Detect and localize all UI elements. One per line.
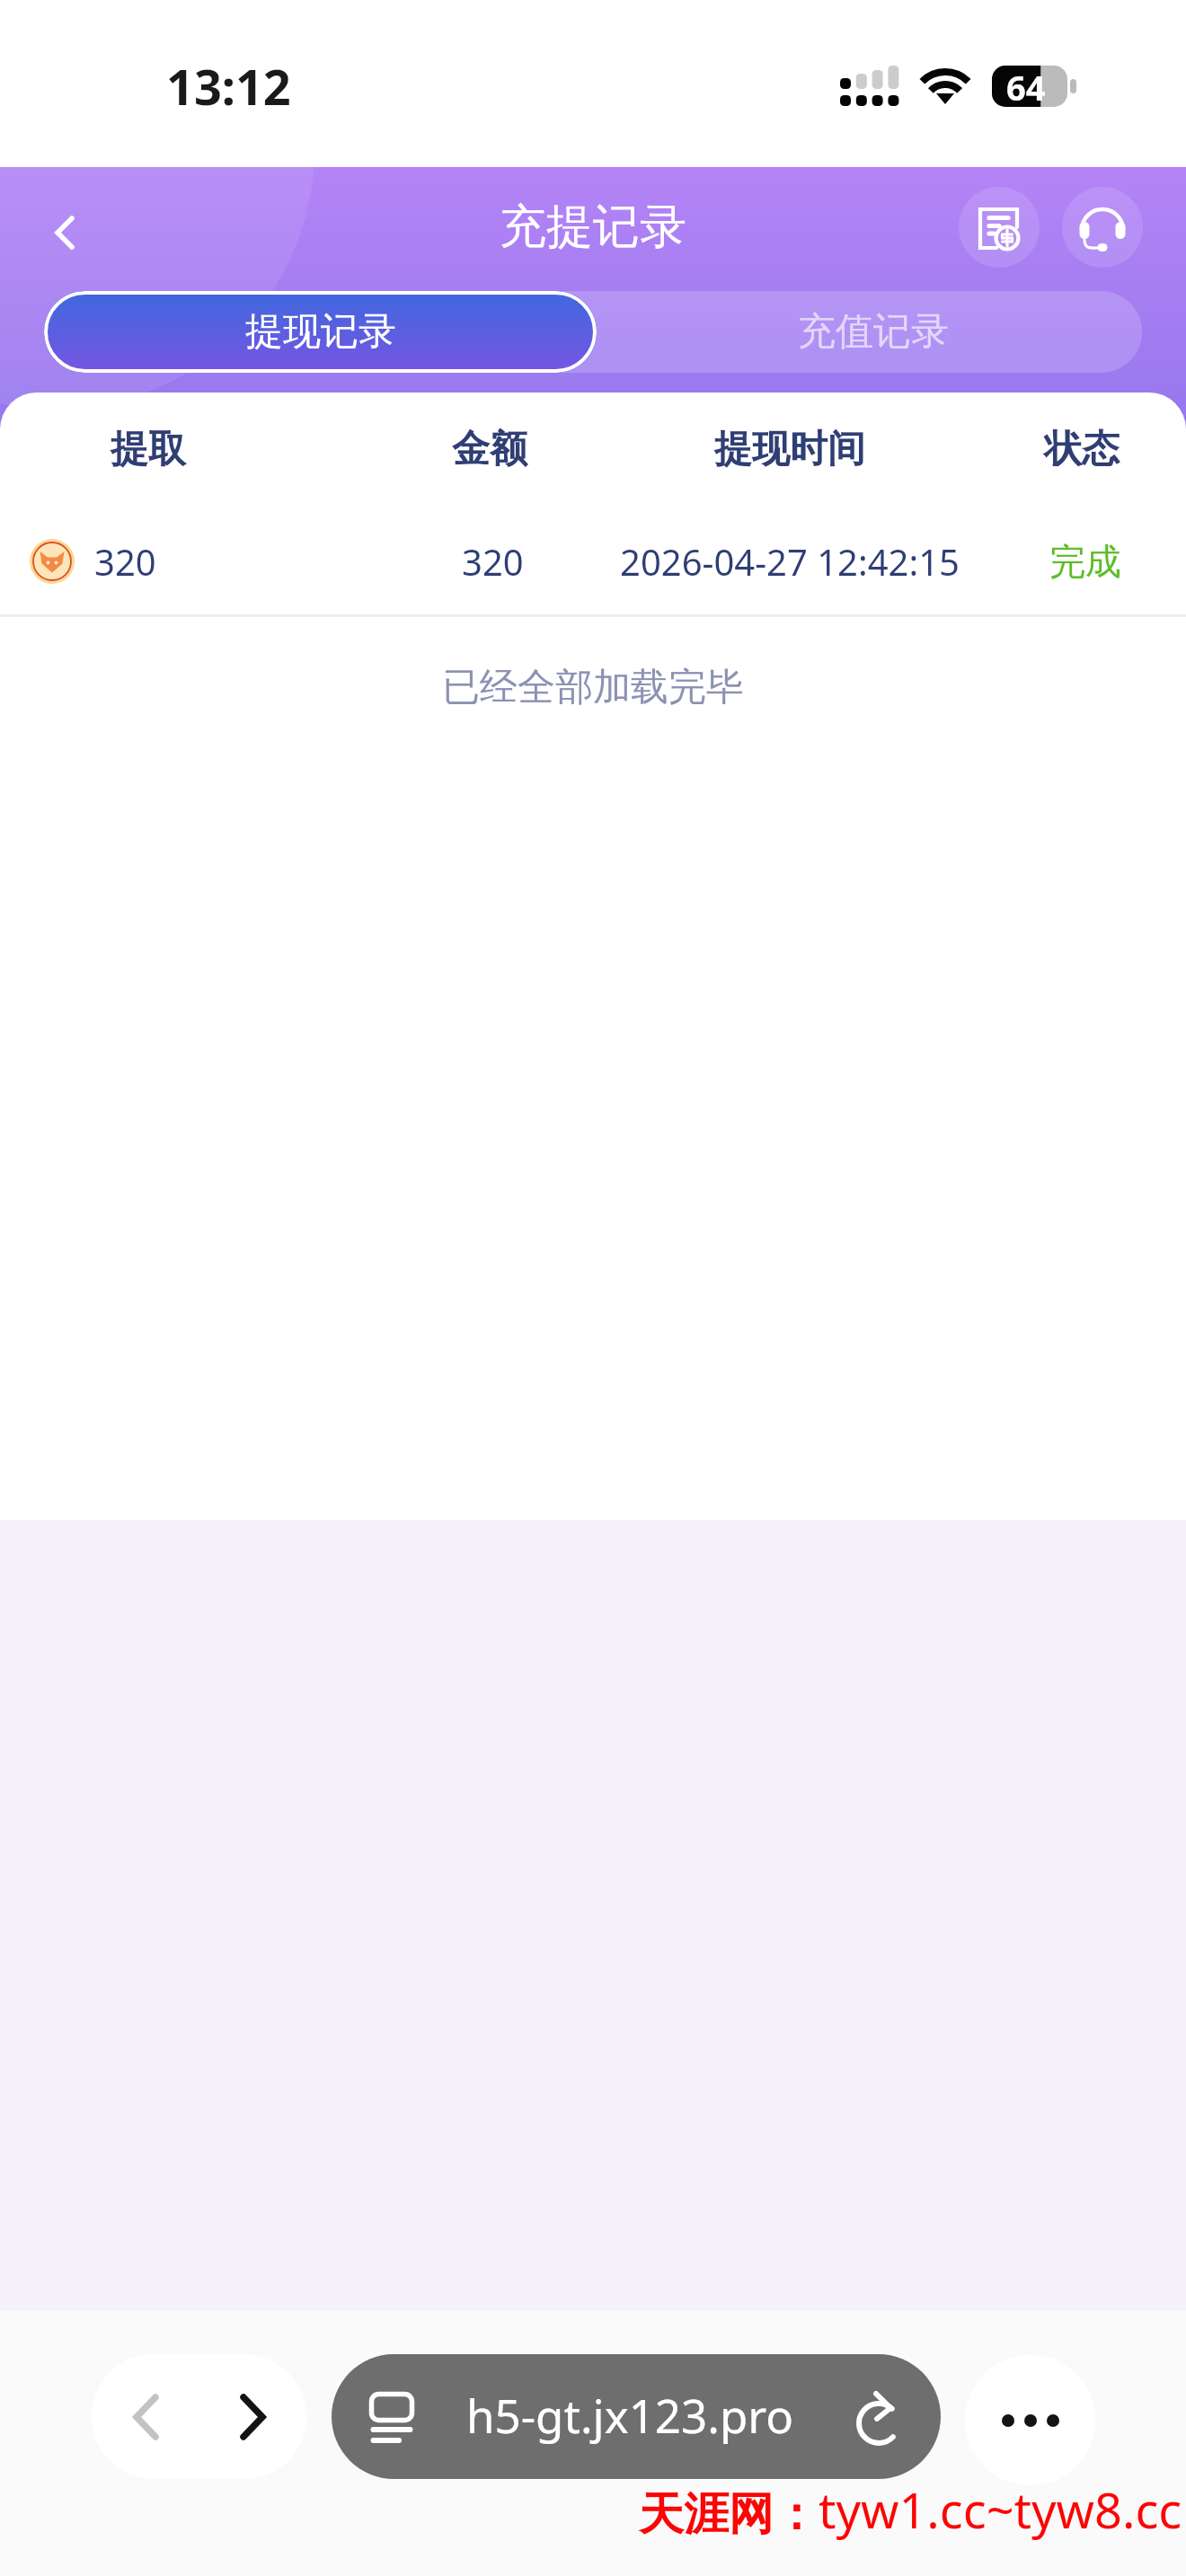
button[interactable]: Back: [27, 190, 97, 260]
button[interactable]: More options: [965, 2355, 1095, 2485]
staticText: 天涯网：: [639, 2486, 819, 2543]
button[interactable]: h5-gt.jx123.pro: [332, 2354, 941, 2479]
staticText: tyw1.cc~tyw8.cc: [819, 2476, 1182, 2543]
staticText: 2026-04-27 12:42:15: [620, 537, 960, 586]
staticText: 320: [94, 537, 156, 586]
staticText: 提现时间: [714, 426, 865, 473]
staticText: 320: [462, 537, 524, 586]
button[interactable]: 提现记录: [44, 291, 597, 373]
staticText: 金额: [452, 426, 527, 473]
button[interactable]: Back: [92, 2354, 199, 2479]
staticText: 13:12: [166, 53, 291, 119]
staticText: 已经全部加载完毕: [0, 664, 1186, 711]
staticText: 充值记录: [798, 308, 949, 356]
button[interactable]: 充值记录: [597, 291, 1142, 373]
button[interactable]: Customer service: [1062, 187, 1143, 268]
staticText: 64: [1006, 64, 1046, 107]
staticText: 完成: [1049, 539, 1121, 584]
staticText: 提取: [111, 426, 186, 473]
button[interactable]: 320: [0, 507, 1186, 615]
staticText: 状态: [1044, 426, 1120, 473]
staticText: h5-gt.jx123.pro: [466, 2384, 794, 2446]
staticText: 充提记录: [500, 198, 686, 257]
button[interactable]: Bill record: [959, 187, 1040, 268]
staticText: 提现记录: [245, 308, 396, 356]
button[interactable]: Forward: [199, 2354, 306, 2479]
